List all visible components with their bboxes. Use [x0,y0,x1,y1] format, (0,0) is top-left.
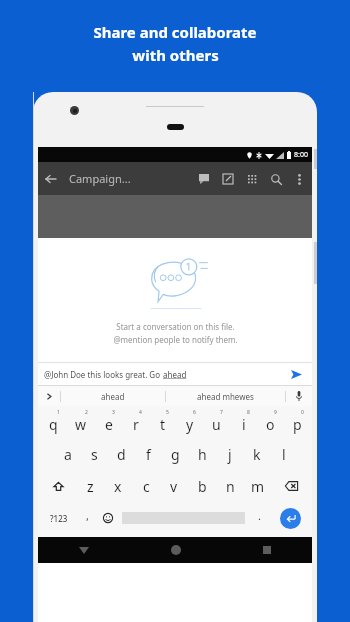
button[interactable]: Open in new [216,167,240,191]
button[interactable]: n [216,470,244,502]
button[interactable]: k [243,438,270,470]
staticText: m [251,477,265,496]
staticText: j [228,445,232,464]
staticText: 6 [193,409,196,416]
button[interactable]: 7 [203,406,230,438]
staticText: f [146,445,151,464]
staticText: z [87,477,94,496]
button[interactable]: Home [130,537,221,563]
staticText: ahead [163,369,187,380]
staticText: Start a conversation on this file. [116,321,235,332]
staticText: 7 [220,409,223,416]
staticText: l [282,445,286,464]
staticText: g [171,445,180,464]
staticText: v [170,477,178,496]
button[interactable]: Recents [221,537,312,563]
staticText: i [242,415,246,434]
button[interactable]: Expand suggestions [38,386,60,406]
button[interactable]: ?123 [40,502,77,534]
staticText: ahead [101,391,125,402]
button[interactable]: Back [38,166,64,192]
staticText: e [105,415,113,434]
staticText: w [75,415,87,434]
button[interactable]: , [77,502,97,534]
staticText: 4 [139,409,142,416]
button[interactable]: Emoji [97,502,119,534]
staticText: q [49,415,58,434]
button[interactable]: 6 [176,406,203,438]
button[interactable]: Enter [270,502,310,534]
staticText: s [91,445,98,464]
staticText: 2 [85,409,88,416]
staticText: n [226,477,235,496]
staticText: 8:00 [294,150,308,160]
button[interactable]: x [104,470,132,502]
staticText: @mention people to notify them. [113,334,238,345]
staticText: p [293,415,302,434]
staticText: ahead mhewes [197,391,254,402]
staticText: 5 [166,409,169,416]
staticText: y [186,415,194,434]
staticText: . [258,508,261,523]
staticText: c [143,477,150,496]
staticText: a [64,445,72,464]
staticText: Share and collaborate [93,22,257,42]
button[interactable]: Grid view [240,167,264,191]
staticText: 8 [247,409,250,416]
button[interactable]: l [270,438,297,470]
staticText: k [253,445,261,464]
staticText: with others [132,45,219,65]
button[interactable]: 9 [257,406,284,438]
button[interactable]: g [162,438,189,470]
button[interactable]: z [77,470,104,502]
staticText: 9 [274,409,277,416]
button[interactable]: b [188,470,216,502]
staticText: 1 [57,409,60,416]
button[interactable]: 5 [149,406,176,438]
staticText: Campaign... [69,171,131,186]
button[interactable]: m [244,470,272,502]
button[interactable]: Voice input [286,386,312,406]
staticText: t [160,415,166,434]
button[interactable]: 2 [67,406,95,438]
button[interactable]: More options [288,168,310,190]
button[interactable]: . [248,502,270,534]
staticText: h [198,445,207,464]
button[interactable]: Send [288,366,304,382]
button[interactable]: Backspace [272,470,311,502]
button[interactable]: @John Doe this looks great. Go [44,363,304,385]
button[interactable]: ahead mhewes [166,386,285,406]
staticText: 3 [112,409,115,416]
staticText: r [133,415,139,434]
staticText: d [117,445,126,464]
staticText: , [86,508,89,523]
button[interactable]: Shift [39,470,77,502]
button[interactable]: Hide keyboard [38,537,130,563]
button[interactable]: v [160,470,188,502]
button[interactable]: h [189,438,216,470]
button[interactable]: 1 [39,406,67,438]
button[interactable]: Space [119,502,248,534]
button[interactable]: s [81,438,108,470]
button[interactable]: c [132,470,160,502]
button[interactable]: ahead [61,386,165,406]
button[interactable]: 3 [95,406,122,438]
button[interactable]: Comments [192,167,216,191]
staticText: ?123 [50,513,68,524]
button[interactable]: Search [264,167,288,191]
button[interactable]: j [216,438,243,470]
button[interactable]: f [135,438,162,470]
staticText: 0 [301,409,304,416]
staticText: u [212,415,221,434]
staticText: x [114,477,122,496]
button[interactable]: a [54,438,81,470]
staticText: o [266,415,275,434]
button[interactable]: 0 [284,406,311,438]
staticText: b [198,477,207,496]
staticText: @John Doe this looks great. Go [44,369,163,380]
button[interactable]: d [108,438,135,470]
button[interactable]: 4 [122,406,149,438]
button[interactable]: 8 [230,406,257,438]
